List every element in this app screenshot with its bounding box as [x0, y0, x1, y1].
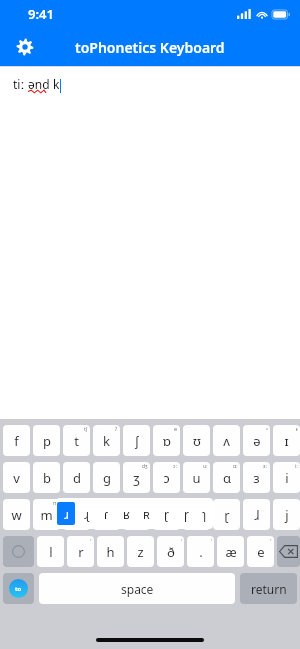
button[interactable]: .	[187, 536, 214, 567]
button[interactable]: ʁ	[153, 499, 180, 530]
staticText: k	[50, 76, 60, 92]
staticText: ɽ	[224, 506, 230, 524]
button[interactable]: ʒ	[123, 462, 150, 493]
staticText: æ	[225, 543, 237, 561]
button[interactable]: ɔ	[153, 462, 180, 493]
staticText: return	[251, 581, 287, 597]
button[interactable]: ʌ	[213, 425, 240, 456]
staticText: ɿ	[202, 506, 207, 522]
staticText: ʀ	[143, 506, 150, 522]
button[interactable]: l	[37, 536, 64, 567]
staticText: ɑ	[223, 469, 231, 487]
button[interactable]: Settings	[12, 34, 38, 60]
staticText: ɽ	[164, 506, 169, 522]
button[interactable]: k	[93, 425, 120, 456]
staticText: ɹ	[64, 506, 69, 522]
staticText: f	[14, 432, 19, 450]
button[interactable]: r	[67, 536, 94, 567]
button[interactable]: ɜ	[243, 462, 270, 493]
staticText: tiː	[13, 76, 28, 92]
button[interactable]: u	[183, 462, 210, 493]
button[interactable]: ɒ	[153, 425, 180, 456]
button[interactable]: p	[33, 425, 60, 456]
staticText: ʁ	[163, 506, 171, 524]
staticText: ʃ	[135, 432, 139, 450]
button[interactable]: Switch keyboard	[3, 573, 34, 604]
button[interactable]: Shift	[3, 536, 34, 567]
staticText: ɒ	[163, 432, 171, 450]
staticText: to	[15, 585, 22, 593]
button[interactable]: ɿ	[196, 498, 213, 529]
staticText: ʁ	[123, 506, 130, 522]
staticText: b	[43, 469, 51, 487]
button[interactable]: ʊ	[183, 425, 210, 456]
button[interactable]: m	[33, 499, 60, 530]
staticText: i	[285, 469, 289, 487]
staticText: n	[102, 506, 111, 524]
button[interactable]: return	[240, 573, 297, 604]
button[interactable]: t	[63, 425, 90, 456]
staticText: e	[257, 543, 265, 561]
button[interactable]: v	[3, 462, 30, 493]
staticText: ʊ	[193, 432, 201, 450]
staticText: z	[137, 543, 144, 561]
staticText: ɺ	[254, 506, 260, 524]
button[interactable]: i	[273, 462, 300, 493]
staticText: ɜː	[263, 463, 268, 470]
button[interactable]: ʀ	[183, 499, 210, 530]
staticText: ɔː	[173, 463, 178, 470]
button[interactable]: h	[97, 536, 124, 567]
button[interactable]: ð	[157, 536, 184, 567]
button[interactable]: w	[3, 499, 30, 530]
button[interactable]: d	[63, 462, 90, 493]
button[interactable]: ɪ	[273, 425, 300, 456]
button[interactable]: b	[33, 462, 60, 493]
staticText: ɔ	[163, 469, 170, 487]
button[interactable]: j	[273, 499, 300, 530]
button[interactable]: ə	[243, 425, 270, 456]
staticText: .	[199, 543, 203, 561]
button[interactable]: ɾ	[123, 499, 150, 530]
button[interactable]: ɻ	[76, 498, 96, 529]
staticText: ᵊ	[266, 426, 268, 433]
staticText: h	[106, 543, 115, 561]
button[interactable]: ʀ	[136, 498, 156, 529]
staticText: g	[103, 469, 111, 487]
staticText: ʲ	[211, 537, 212, 544]
staticText: ð	[167, 543, 175, 561]
button[interactable]: ɹ	[57, 502, 75, 525]
staticText: j	[285, 506, 289, 524]
staticText: ɪ	[284, 432, 289, 450]
staticText: r	[74, 506, 80, 524]
staticText: ɱ	[53, 500, 58, 507]
button[interactable]: ɽ	[213, 499, 240, 530]
button[interactable]: ɑ	[213, 462, 240, 493]
staticText: ʳ	[270, 537, 272, 544]
button[interactable]: ɽ	[156, 498, 176, 529]
staticText: ənd	[28, 76, 50, 92]
staticText: dʒ	[142, 463, 148, 470]
staticText: toPhonetics Keyboard	[75, 38, 225, 57]
button[interactable]: r	[63, 499, 90, 530]
button[interactable]: n	[93, 499, 120, 530]
button[interactable]: Backspace	[277, 536, 300, 567]
button[interactable]: æ	[217, 536, 244, 567]
staticText: ɑː	[233, 463, 238, 470]
staticText: ɜ	[253, 469, 260, 487]
button[interactable]: g	[93, 462, 120, 493]
staticText: ʔ	[115, 426, 118, 433]
button[interactable]: ɼ	[176, 498, 196, 529]
button[interactable]: space	[39, 573, 235, 604]
button[interactable]: ʃ	[123, 425, 150, 456]
button[interactable]: e	[247, 536, 274, 567]
staticText: k	[103, 432, 110, 450]
button[interactable]: z	[127, 536, 154, 567]
button[interactable]: ʁ	[116, 498, 136, 529]
staticText: t	[74, 432, 79, 450]
button[interactable]: ɺ	[243, 499, 270, 530]
staticText: ɼ	[184, 506, 189, 522]
button[interactable]: f	[3, 425, 30, 456]
button[interactable]: ɾ	[96, 498, 116, 529]
